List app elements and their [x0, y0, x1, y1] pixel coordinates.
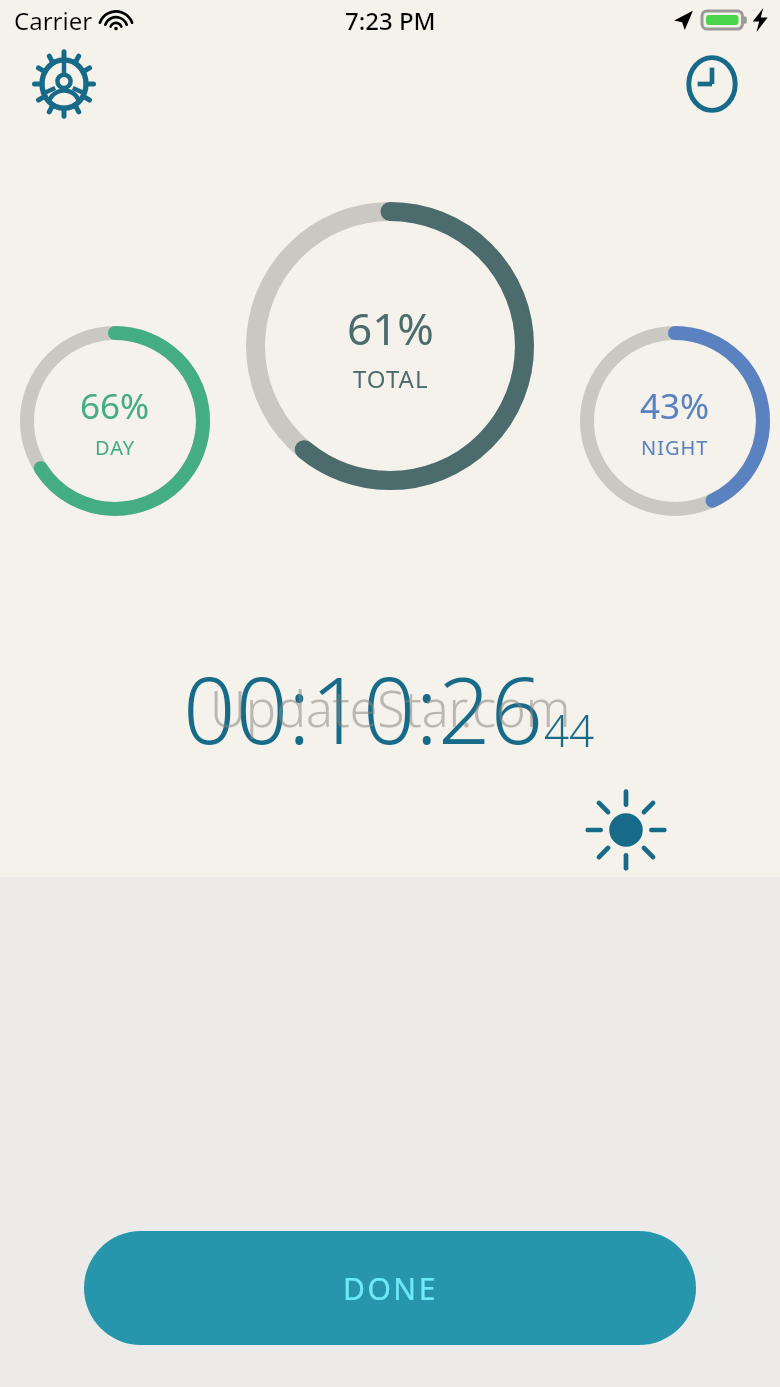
staticText: DONE	[343, 1268, 438, 1309]
staticText: TOTAL	[353, 362, 429, 395]
button[interactable]: Daylight	[580, 784, 672, 876]
staticText: 66%	[80, 382, 150, 430]
staticText: NIGHT	[641, 434, 709, 461]
staticText: DAY	[95, 434, 136, 461]
staticText: 61%	[347, 298, 434, 358]
button[interactable]: Settings	[28, 48, 100, 120]
staticText: UpdateStar.com	[210, 674, 571, 742]
staticText: 7:23 PM	[345, 4, 436, 37]
staticText: 00:10:26	[183, 646, 544, 766]
staticText: Carrier	[14, 4, 93, 37]
button[interactable]: History	[676, 48, 748, 120]
staticText: 44	[544, 700, 595, 760]
button[interactable]: DONE	[84, 1231, 696, 1345]
staticText: 43%	[640, 382, 710, 430]
